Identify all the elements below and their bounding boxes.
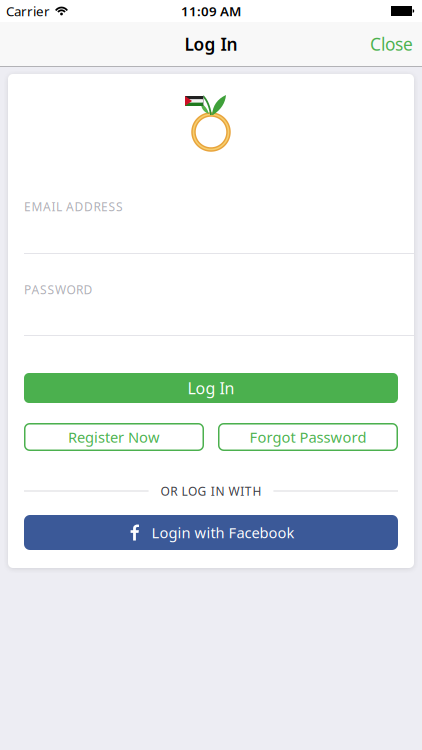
button[interactable]: Close: [370, 22, 422, 66]
staticText: Carrier: [6, 2, 50, 20]
button[interactable]: Log In: [24, 373, 398, 403]
staticText: Log In: [187, 377, 234, 399]
staticText: Forgot Password: [249, 427, 366, 447]
staticText: Login with Facebook: [151, 523, 294, 542]
staticText: 11:09 AM: [181, 2, 241, 20]
staticText: EMAIL ADDRESS: [24, 198, 123, 214]
staticText: Log In: [184, 32, 237, 55]
staticText: OR LOG IN WITH: [161, 483, 261, 499]
staticText: Register Now: [68, 427, 160, 447]
button[interactable]: Register Now: [24, 423, 204, 451]
staticText: Close: [370, 32, 413, 55]
button[interactable]: Login with Facebook: [24, 515, 398, 550]
button[interactable]: Forgot Password: [218, 423, 398, 451]
staticText: PASSWORD: [24, 281, 92, 297]
